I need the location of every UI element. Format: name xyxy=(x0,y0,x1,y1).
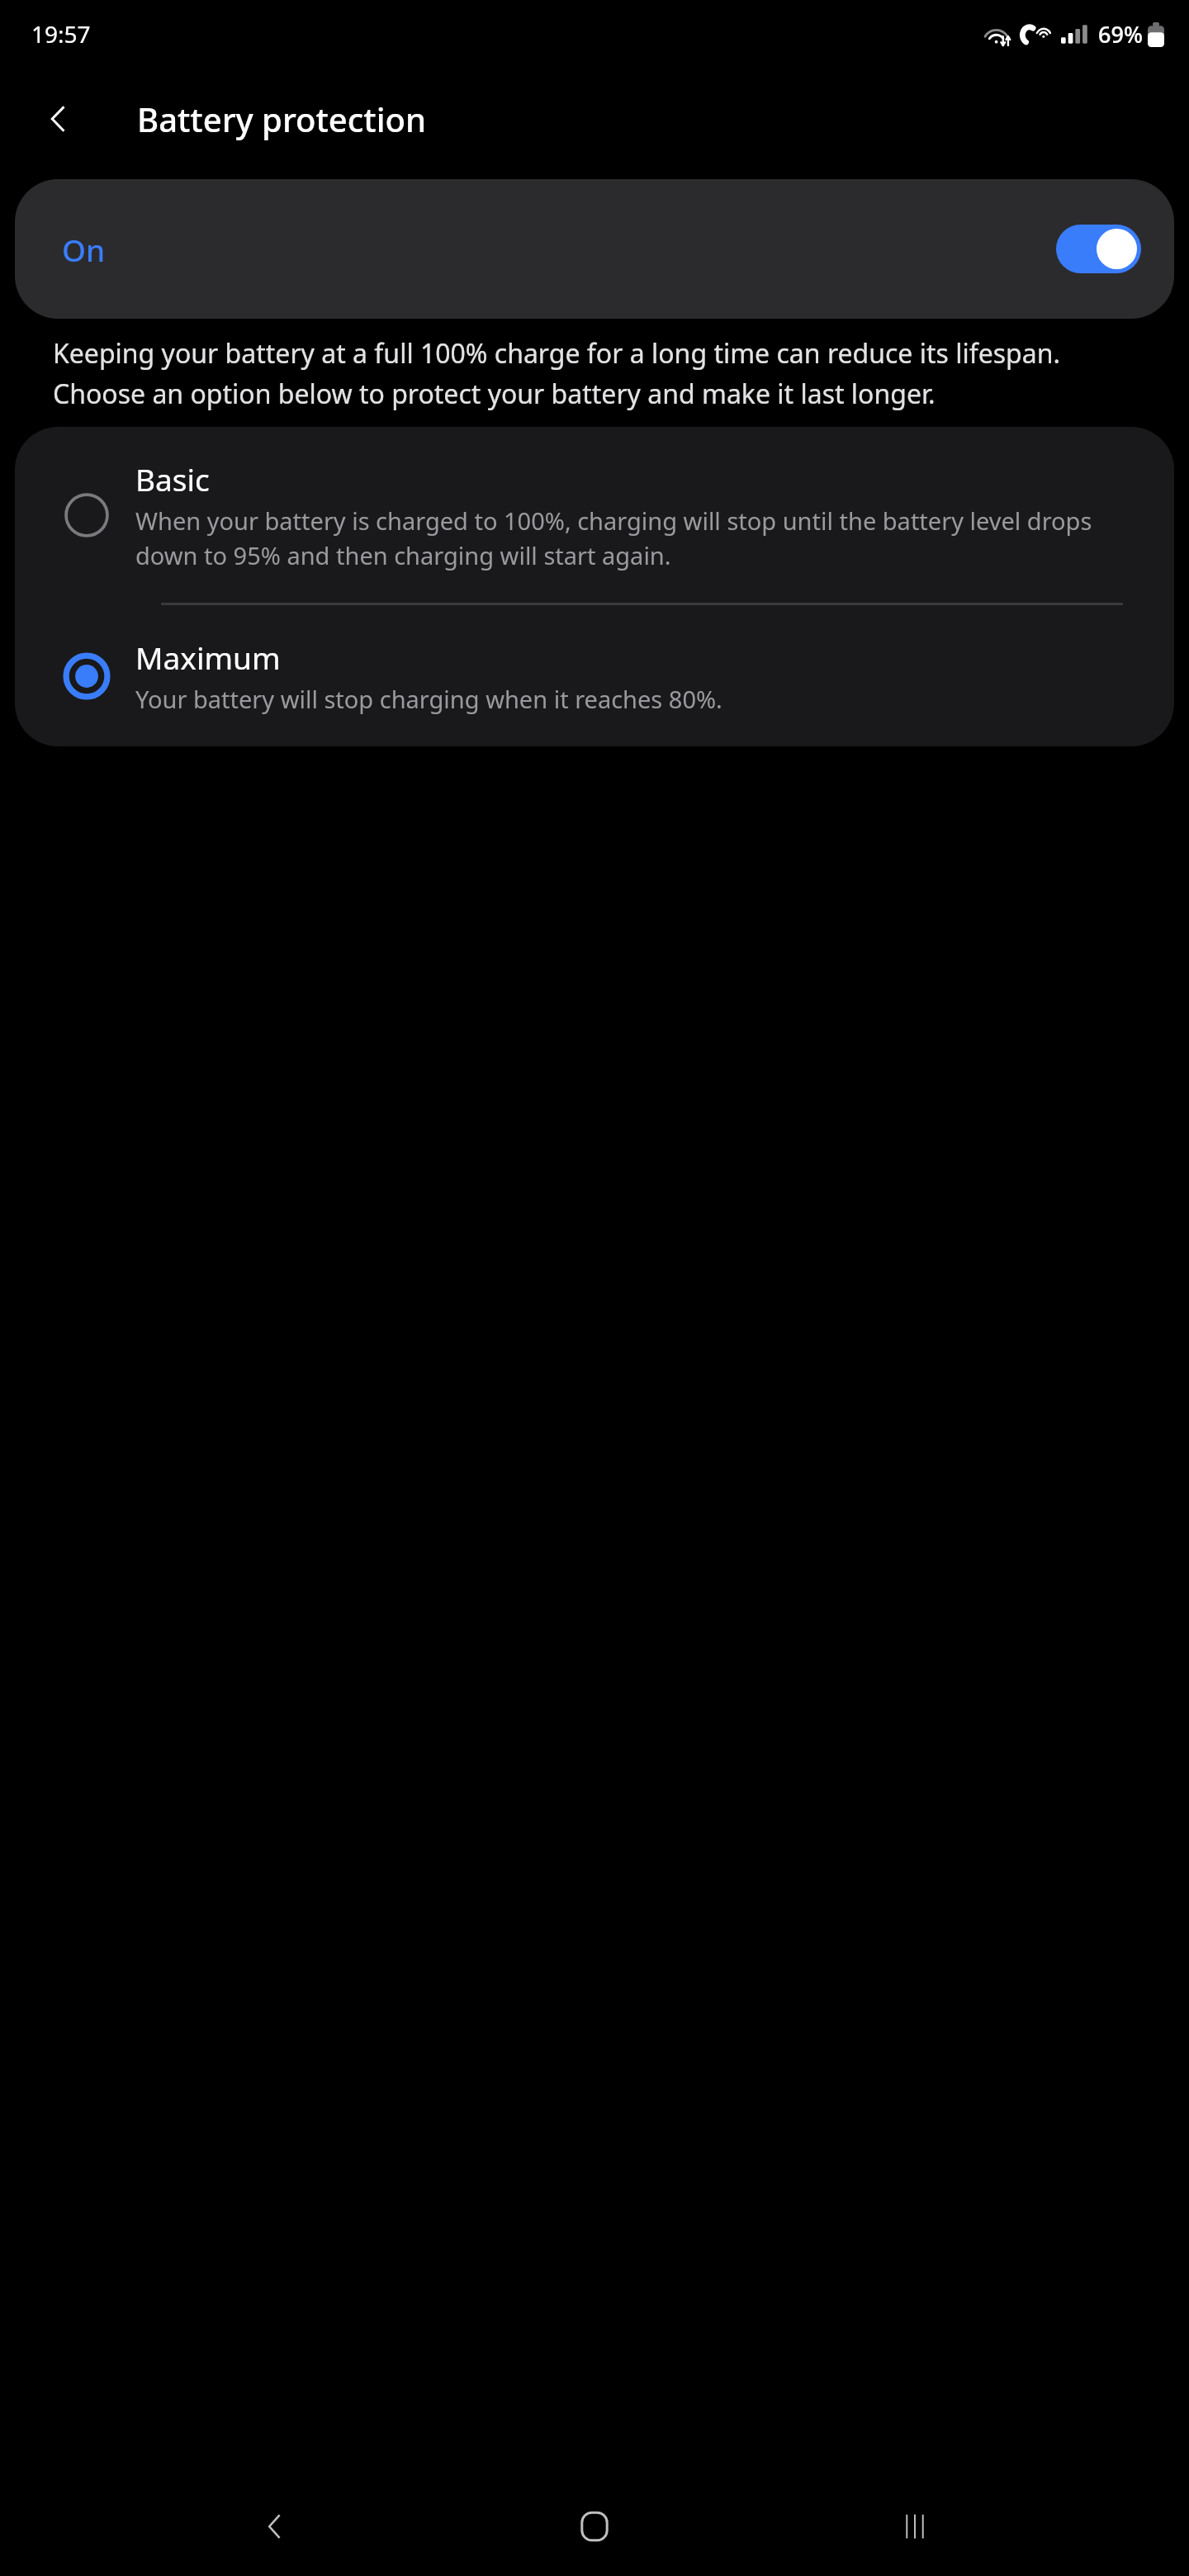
staticText: Keeping your battery at a full 100% char… xyxy=(53,335,1151,411)
button[interactable]: Back xyxy=(33,93,84,144)
button[interactable]: Recent apps xyxy=(869,2481,960,2572)
staticText: Maximum xyxy=(135,637,281,678)
button[interactable]: Maximum xyxy=(15,605,1174,746)
staticText: Battery protection xyxy=(137,97,426,141)
button[interactable]: Back xyxy=(230,2481,320,2572)
staticText: 69% xyxy=(1098,19,1143,50)
button[interactable]: On xyxy=(15,179,1174,319)
button[interactable]: Home xyxy=(549,2481,640,2572)
staticText: On xyxy=(62,229,106,270)
staticText: When your battery is charged to 100%, ch… xyxy=(135,504,1135,571)
staticText: 19:57 xyxy=(31,18,91,50)
staticText: Basic xyxy=(135,458,210,500)
staticText: Your battery will stop charging when it … xyxy=(135,683,722,715)
button[interactable]: Basic xyxy=(15,427,1174,603)
